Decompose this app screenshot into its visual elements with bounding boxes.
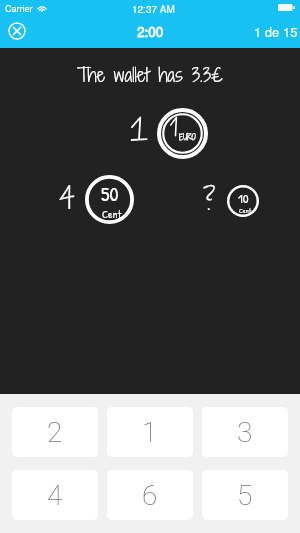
staticText: 4 (47, 479, 63, 512)
staticText: 10 (238, 189, 249, 207)
staticText: 12:37 AM (132, 2, 175, 16)
button[interactable]: 1 (107, 407, 193, 457)
staticText: 5 (237, 479, 253, 512)
staticText: 4 (59, 178, 75, 219)
button[interactable]: Close (4, 18, 30, 44)
staticText: EURO (179, 132, 196, 143)
button[interactable]: 5 (202, 470, 288, 520)
staticText: Cent (239, 206, 252, 215)
button[interactable]: 6 (107, 470, 193, 520)
staticText: 1 (142, 416, 158, 449)
staticText: 2 (47, 416, 63, 449)
staticText: Cent (102, 207, 122, 222)
staticText: 3 (237, 416, 253, 449)
staticText: The wallet has 3.3€ (0, 62, 300, 88)
staticText: ? (203, 182, 216, 218)
button[interactable]: 3 (202, 407, 288, 457)
staticText: 1 de 15 (254, 22, 298, 41)
button[interactable]: 2 (12, 407, 98, 457)
staticText: 2:00 (137, 22, 164, 41)
button[interactable]: 4 (12, 470, 98, 520)
staticText: Carrier (5, 2, 33, 15)
staticText: 50 (101, 180, 119, 207)
staticText: 6 (142, 479, 158, 512)
